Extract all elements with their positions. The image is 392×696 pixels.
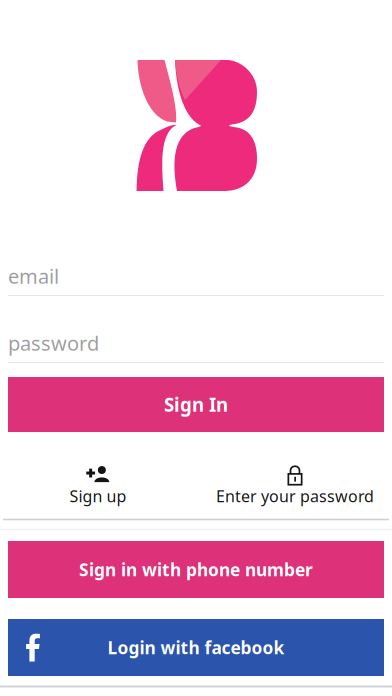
staticText: Login with facebook bbox=[107, 636, 284, 659]
staticText: email bbox=[8, 263, 59, 289]
button[interactable]: Enter your password bbox=[201, 454, 389, 510]
staticText: Enter your password bbox=[216, 485, 374, 507]
button[interactable]: Login with facebook bbox=[8, 619, 384, 676]
staticText: password bbox=[8, 330, 99, 356]
staticText: Sign In bbox=[164, 392, 228, 417]
button[interactable]: Sign up bbox=[4, 454, 192, 510]
staticText: Sign in with phone number bbox=[79, 558, 313, 581]
button[interactable]: Sign In bbox=[8, 377, 384, 432]
staticText: Sign up bbox=[69, 485, 126, 507]
button[interactable]: Sign in with phone number bbox=[8, 541, 384, 598]
